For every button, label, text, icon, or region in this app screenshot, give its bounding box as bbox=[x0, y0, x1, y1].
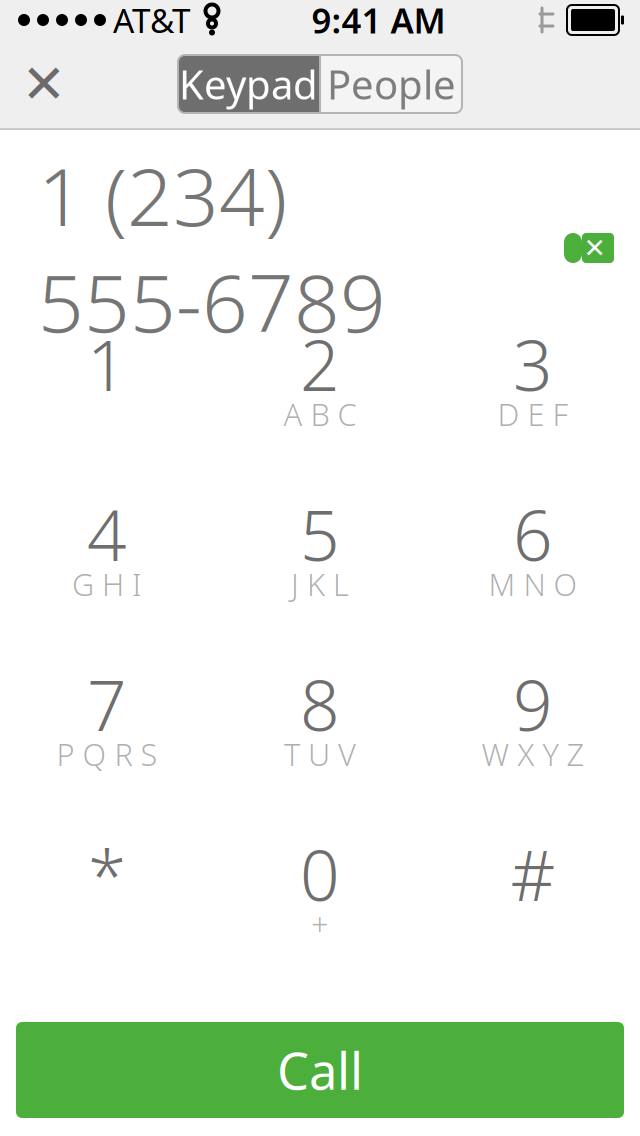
staticText: 0 bbox=[300, 828, 340, 920]
staticText: 3 bbox=[513, 318, 553, 410]
staticText: A B C bbox=[283, 394, 356, 434]
button[interactable]: 3 bbox=[426, 296, 639, 466]
button[interactable]: 4 bbox=[0, 466, 213, 636]
staticText: D E F bbox=[497, 394, 568, 434]
button[interactable]: People bbox=[321, 55, 462, 113]
staticText: 7 bbox=[87, 658, 127, 750]
button[interactable]: 2 bbox=[213, 296, 426, 466]
staticText: ✕ bbox=[21, 54, 66, 114]
staticText: M N O bbox=[488, 564, 577, 604]
staticText: 4 bbox=[87, 488, 127, 580]
staticText: 1 bbox=[87, 318, 127, 410]
staticText: 1 (234) 555-6789 bbox=[38, 142, 386, 354]
button[interactable]: 7 bbox=[0, 636, 213, 806]
staticText: 6 bbox=[513, 488, 553, 580]
staticText: 9:41 AM bbox=[311, 0, 445, 43]
staticText: 2 bbox=[300, 318, 340, 410]
staticText: W X Y Z bbox=[481, 734, 584, 774]
staticText: Call bbox=[277, 1036, 363, 1104]
button[interactable]: 1 bbox=[0, 296, 213, 466]
staticText: J K L bbox=[291, 564, 349, 604]
staticText: + bbox=[311, 904, 329, 944]
button[interactable]: * bbox=[0, 806, 213, 976]
button[interactable]: 0 bbox=[213, 806, 426, 976]
staticText: People bbox=[327, 57, 456, 110]
staticText: ✕ bbox=[583, 233, 605, 263]
staticText: * bbox=[88, 828, 126, 920]
button[interactable]: Keypad bbox=[178, 55, 319, 113]
button[interactable]: Close bbox=[0, 40, 88, 128]
button[interactable]: 6 bbox=[426, 466, 639, 636]
button[interactable]: 5 bbox=[213, 466, 426, 636]
staticText: Keypad bbox=[179, 57, 318, 110]
staticText: 5 bbox=[300, 488, 340, 580]
button[interactable]: # bbox=[426, 806, 639, 976]
staticText: G H I bbox=[72, 564, 142, 604]
button[interactable]: 9 bbox=[426, 636, 639, 806]
staticText: 8 bbox=[300, 658, 340, 750]
staticText: P Q R S bbox=[56, 734, 157, 774]
staticText: AT&T bbox=[113, 0, 191, 42]
staticText: # bbox=[510, 828, 555, 920]
staticText: 9 bbox=[513, 658, 553, 750]
button[interactable]: Delete bbox=[554, 216, 624, 280]
button[interactable]: Call bbox=[16, 1022, 624, 1118]
staticText: T U V bbox=[284, 734, 356, 774]
button[interactable]: 8 bbox=[213, 636, 426, 806]
